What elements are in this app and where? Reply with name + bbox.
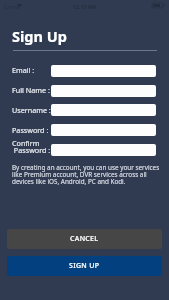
other: Wi-Fi bbox=[17, 3, 22, 7]
button[interactable]: CANCEL bbox=[7, 229, 162, 249]
staticText: By creating an account, you can use your… bbox=[12, 163, 160, 186]
button[interactable] bbox=[51, 124, 156, 136]
other: Battery bbox=[152, 3, 165, 8]
staticText: Sign Up bbox=[12, 26, 67, 46]
staticText: 12:13 AM bbox=[73, 3, 97, 10]
staticText: Carrier bbox=[4, 3, 21, 10]
button[interactable] bbox=[51, 85, 156, 97]
button[interactable]: SIGN UP bbox=[7, 256, 162, 276]
staticText: Full Name : bbox=[12, 85, 52, 95]
button[interactable] bbox=[51, 104, 156, 116]
button[interactable] bbox=[51, 65, 156, 77]
button[interactable] bbox=[51, 144, 156, 156]
staticText: Email : bbox=[12, 65, 52, 75]
staticText: Username : bbox=[12, 105, 52, 115]
staticText: CANCEL bbox=[70, 234, 99, 244]
staticText: Confirm Password : bbox=[12, 138, 52, 156]
staticText: Password : bbox=[12, 125, 52, 135]
staticText: SIGN UP bbox=[69, 261, 100, 271]
